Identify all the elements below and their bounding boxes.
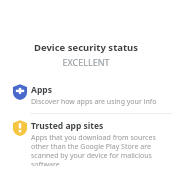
staticText: Apps that you download from sources othe… — [31, 133, 166, 166]
staticText: Apps — [31, 84, 52, 96]
button[interactable]: Apps — [0, 78, 172, 113]
other: Apps — [9, 84, 30, 100]
other: Trusted app sites — [9, 120, 30, 136]
staticText: Discover how apps are using your info — [31, 97, 157, 107]
staticText: Device security status — [0, 41, 172, 54]
staticText: Trusted app sites — [31, 120, 104, 132]
button[interactable]: Trusted app sites — [0, 114, 172, 172]
staticText: EXCELLENT — [0, 56, 172, 68]
